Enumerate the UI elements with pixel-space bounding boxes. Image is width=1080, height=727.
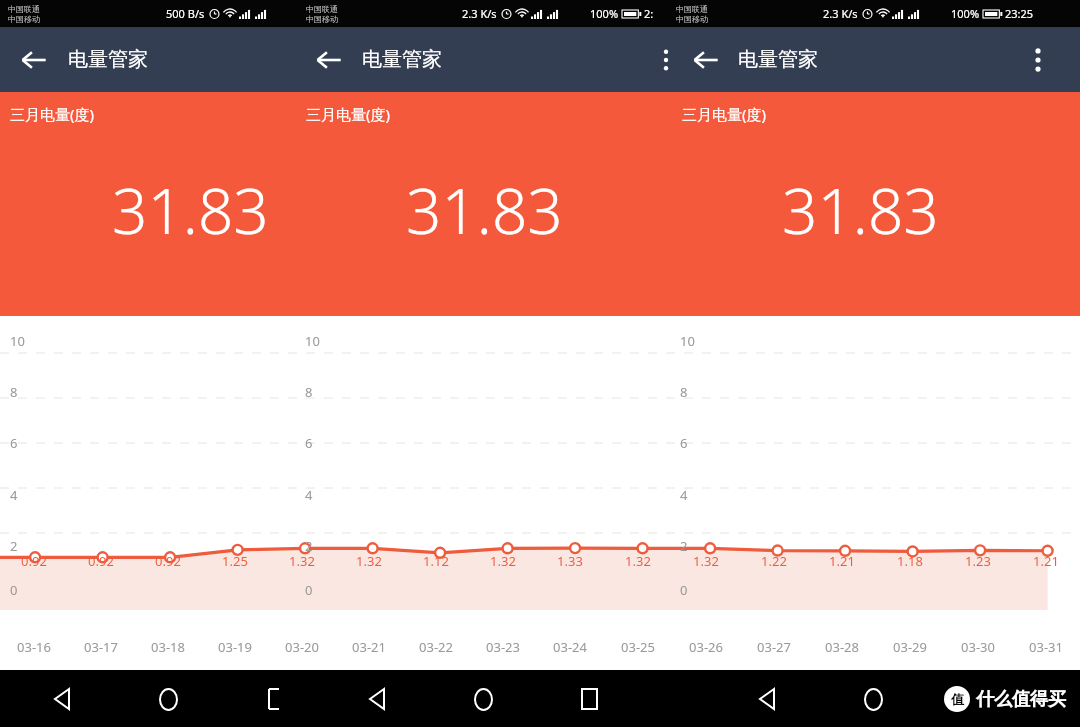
staticText: 三月电量(度) [682,104,767,124]
staticText: 23:25 [1005,6,1034,21]
button[interactable]: Recent apps [252,677,296,721]
staticText: 1.32 [693,552,719,570]
staticText: 0.92 [21,552,47,570]
staticText: 10 [10,332,25,350]
staticText: 2.3 K/s [462,6,497,21]
staticText: 1.25 [222,552,248,570]
staticText: 03-17 [84,638,118,656]
staticText: 1.22 [761,552,787,570]
staticText: 100% [951,6,980,21]
button[interactable]: Recent apps [567,677,611,721]
staticText: 1.32 [625,552,651,570]
staticText: 8 [305,383,313,401]
staticText: 中国移动 [676,14,708,24]
staticText: 2 [10,537,18,555]
staticText: 03-22 [419,638,453,656]
staticText: 10 [680,332,695,350]
button[interactable]: More options [1018,40,1058,80]
staticText: 4 [680,486,688,504]
staticText: 值 [951,691,964,707]
button[interactable]: Home [461,677,505,721]
staticText: 1.32 [289,552,315,570]
staticText: 1.18 [897,552,923,570]
button[interactable]: Back [686,40,726,80]
staticText: 100% [590,6,619,21]
staticText: 1.21 [829,552,855,570]
staticText: 0 [305,581,313,599]
button[interactable]: Back [40,677,84,721]
staticText: 三月电量(度) [306,104,391,124]
staticText: 4 [10,486,18,504]
staticText: 0 [10,581,18,599]
staticText: 1.23 [965,552,991,570]
button[interactable]: 电量管家 [68,47,148,72]
staticText: 6 [305,434,313,452]
button[interactable]: 电量管家 [738,47,818,72]
staticText: 8 [680,383,688,401]
staticText: 中国移动 [8,14,40,24]
button[interactable]: Back [309,40,349,80]
staticText: 中国联通 [676,4,708,14]
staticText: 中国移动 [306,14,338,24]
staticText: 中国联通 [8,4,40,14]
staticText: 什么值得买 [976,688,1066,711]
staticText: 10 [305,332,320,350]
staticText: 03-19 [218,638,252,656]
staticText: 6 [10,434,18,452]
staticText: 500 B/s [166,6,205,21]
staticText: 03-24 [553,638,587,656]
button[interactable]: Home [146,677,190,721]
staticText: 31.83 [112,168,269,252]
staticText: 03-26 [689,638,723,656]
staticText: 03-21 [352,638,386,656]
staticText: 1.21 [1033,552,1059,570]
staticText: 2 [305,537,313,555]
button[interactable]: Home [851,677,895,721]
staticText: 1.33 [557,552,583,570]
staticText: 03-20 [285,638,319,656]
staticText: 中国联通 [306,4,338,14]
button[interactable]: More options [666,47,671,73]
staticText: 6 [680,434,688,452]
staticText: 0.92 [88,552,114,570]
staticText: 0 [680,581,688,599]
button[interactable]: Back [745,677,789,721]
staticText: 31.83 [782,168,939,252]
staticText: 03-31 [1029,638,1063,656]
staticText: 1.32 [356,552,382,570]
staticText: 4 [305,486,313,504]
staticText: 03-18 [151,638,185,656]
staticText: 8 [10,383,18,401]
button[interactable]: Back [14,40,54,80]
staticText: 2: [644,6,654,21]
staticText: 03-25 [621,638,655,656]
staticText: 03-29 [893,638,927,656]
staticText: 2.3 K/s [823,6,858,21]
staticText: 1.32 [490,552,516,570]
button[interactable]: Back [355,677,399,721]
staticText: 03-16 [17,638,51,656]
staticText: 0.92 [155,552,181,570]
staticText: 31.83 [406,168,563,252]
staticText: 03-28 [825,638,859,656]
button[interactable]: 电量管家 [362,47,442,72]
staticText: 2 [680,537,688,555]
staticText: 03-23 [486,638,520,656]
staticText: 三月电量(度) [10,104,95,124]
staticText: 03-27 [757,638,791,656]
staticText: 1.12 [423,552,449,570]
staticText: 03-30 [961,638,995,656]
